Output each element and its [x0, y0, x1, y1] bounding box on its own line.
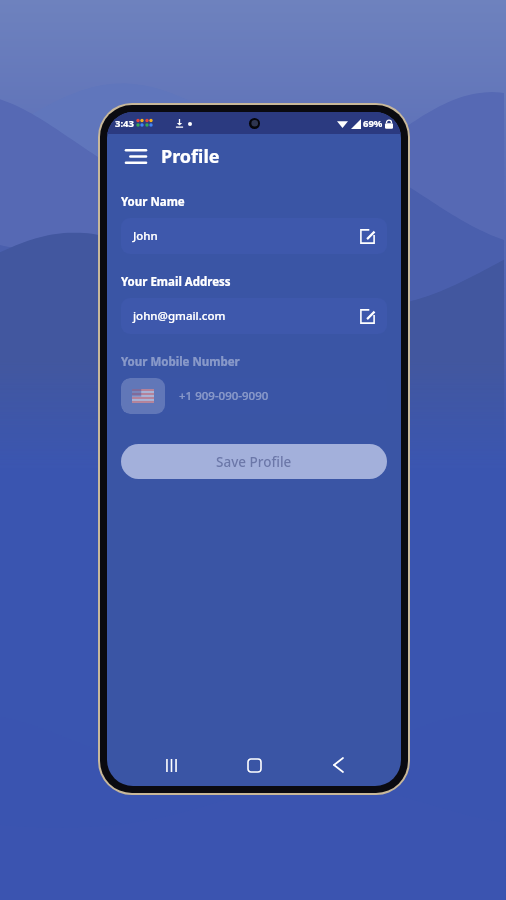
staticText: 3:43	[115, 117, 134, 130]
button[interactable]: Menu	[121, 141, 151, 171]
staticText: John	[133, 228, 158, 244]
button[interactable]: Back	[318, 745, 358, 785]
button[interactable]: Save Profile	[121, 444, 387, 479]
staticText: Your Name	[121, 194, 185, 210]
staticText: john@gmail.com	[133, 308, 226, 324]
staticText: Profile	[161, 144, 220, 169]
button[interactable]: Home	[234, 745, 274, 785]
staticText: Your Mobile Number	[121, 354, 240, 370]
other: Edit Your Email Address	[360, 309, 375, 324]
other: Country flag	[132, 389, 154, 403]
button[interactable]: John	[121, 218, 387, 254]
button[interactable]: Recents	[151, 745, 191, 785]
staticText: Your Email Address	[121, 274, 231, 290]
other: Edit Your Name	[360, 229, 375, 244]
staticText: Save Profile	[216, 453, 292, 471]
button[interactable]: john@gmail.com	[121, 298, 387, 334]
button[interactable]: Country flag	[121, 378, 387, 414]
staticText: +1 909-090-9090	[179, 388, 269, 404]
staticText: 69%	[363, 117, 383, 130]
